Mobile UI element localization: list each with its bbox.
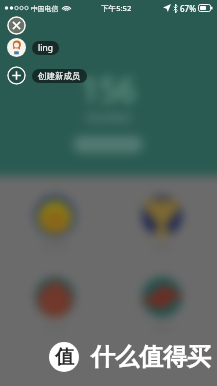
staticText: 什么值得买 [91, 342, 211, 372]
button[interactable]: Member ling [7, 38, 26, 57]
staticText: 156 [0, 68, 217, 112]
staticText: 值 [55, 345, 74, 369]
staticText: 下午5:52 [101, 3, 132, 13]
staticText: 中国电信 [31, 4, 59, 13]
staticText: 创建新成员 [38, 71, 81, 82]
button[interactable]: 创建新成员 [32, 69, 87, 83]
button[interactable]: Close [7, 16, 26, 35]
staticText: 我的能量值 [0, 112, 217, 123]
button[interactable]: ling [32, 41, 59, 55]
staticText: ling [38, 42, 53, 54]
staticText: 67% [180, 3, 196, 14]
button[interactable]: Add member [7, 66, 26, 85]
